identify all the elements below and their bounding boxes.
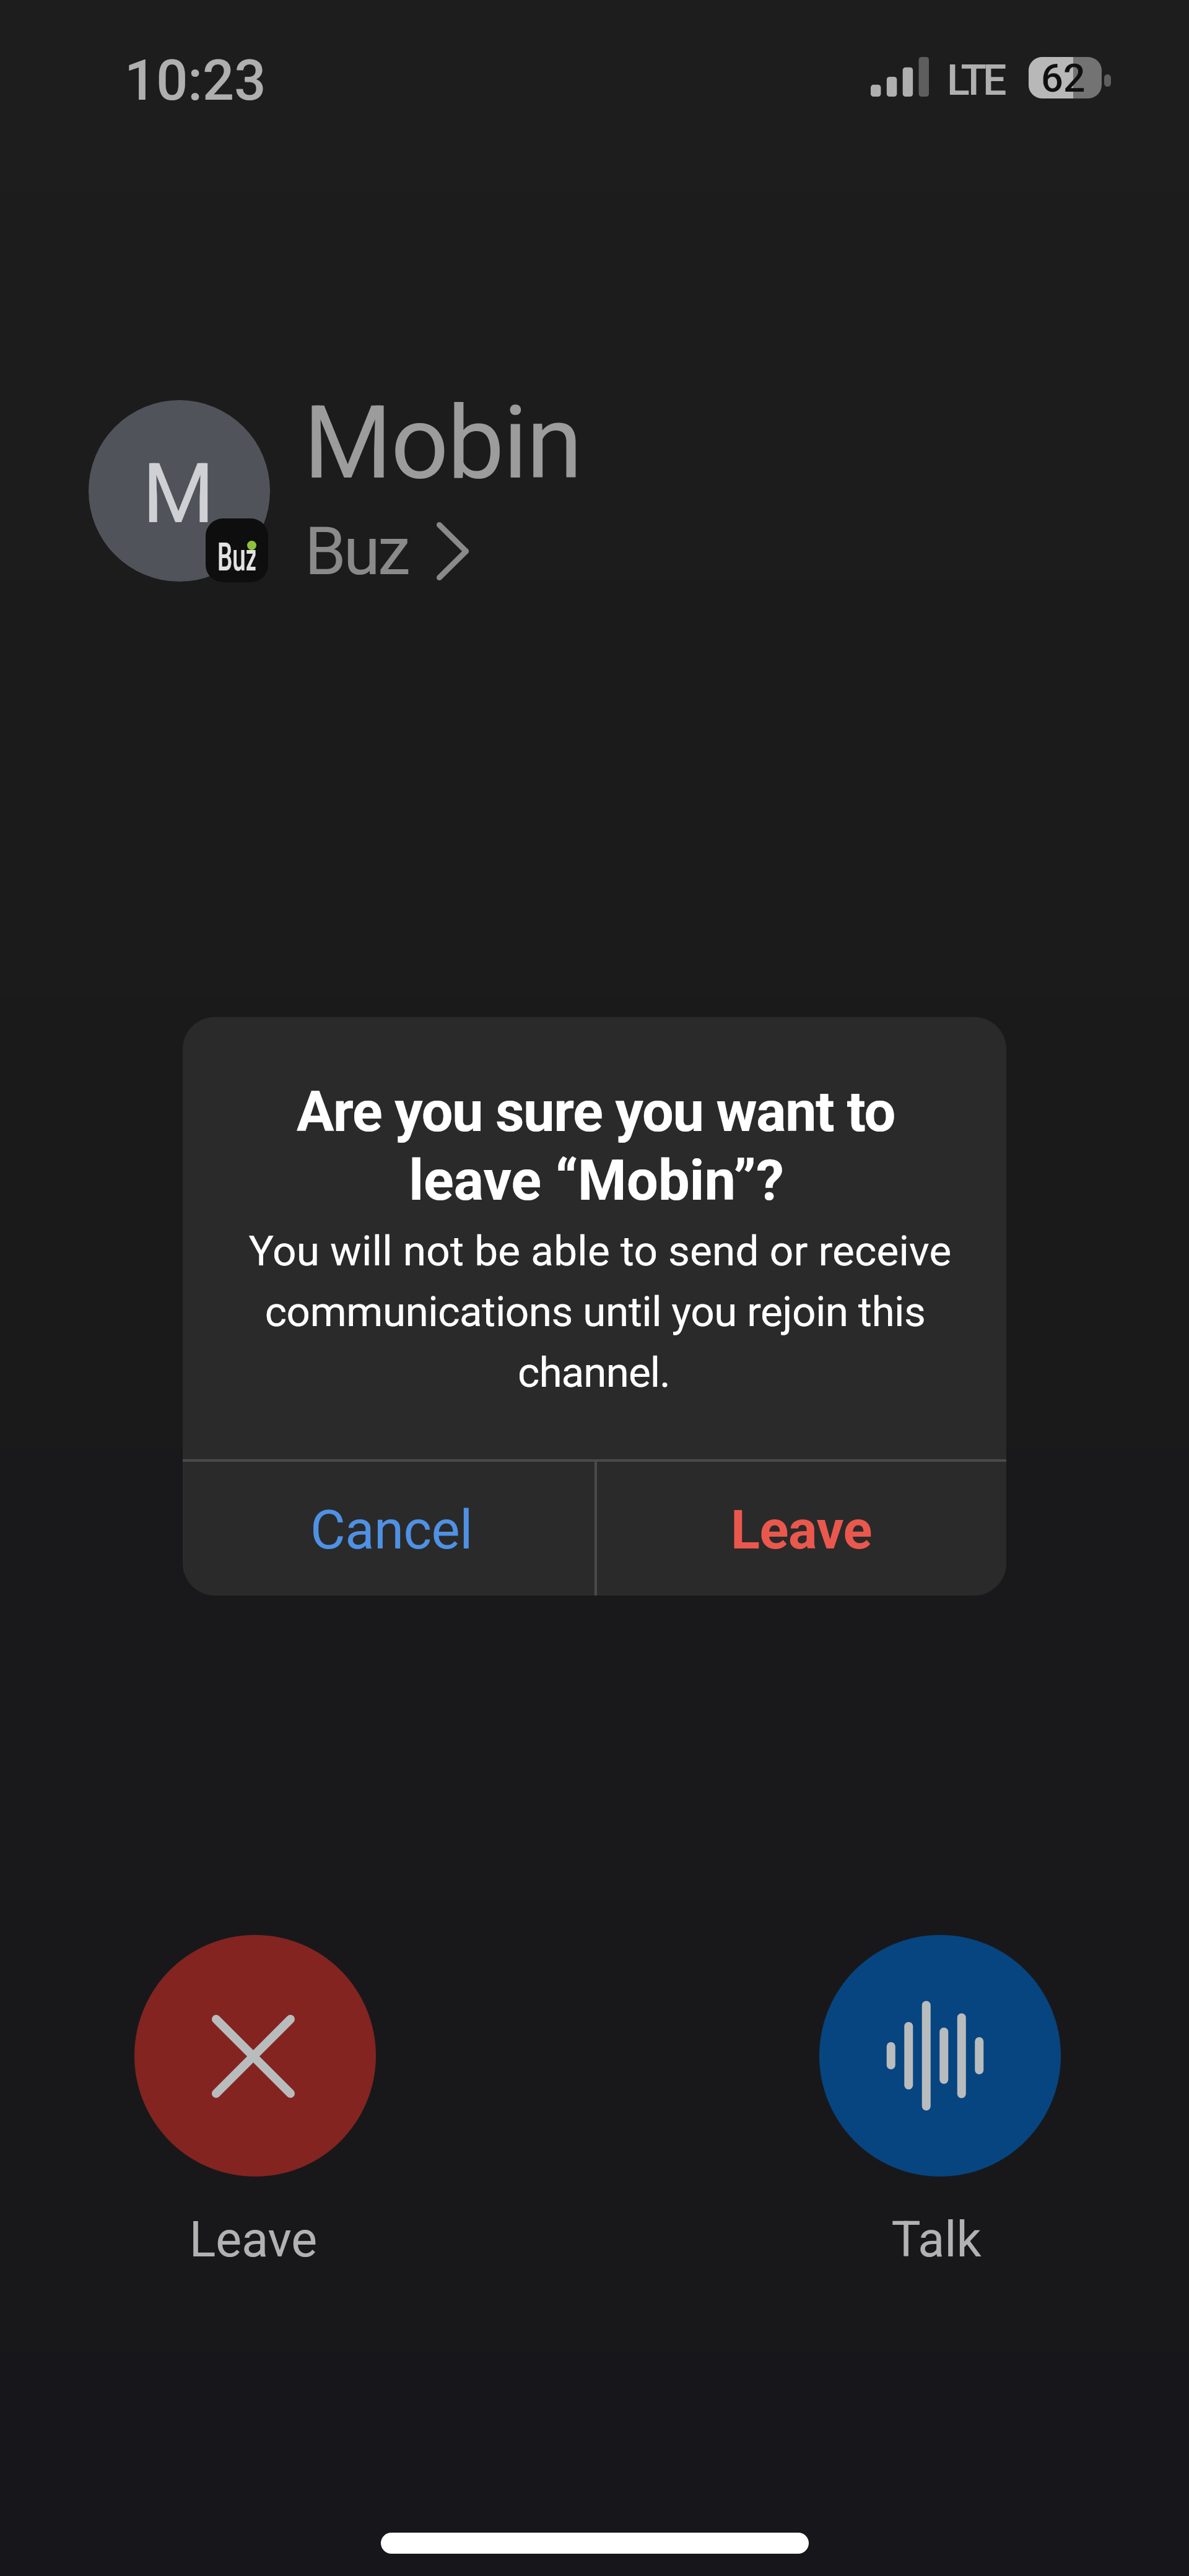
staticText: Mobin <box>303 383 581 502</box>
staticText: Buz <box>217 535 256 580</box>
button[interactable]: Leave channel <box>134 1935 376 2177</box>
staticText: Are you sure you want to <box>162 1080 1029 1145</box>
staticText: Buz <box>305 513 408 590</box>
staticText: communications until you rejoin this <box>162 1287 1029 1336</box>
staticText: Cancel <box>310 1498 473 1561</box>
button[interactable]: Leave <box>596 1458 1006 1596</box>
button[interactable]: Cancel <box>183 1458 594 1596</box>
staticText: Leave <box>0 2211 687 2269</box>
staticText: Leave <box>731 1498 872 1561</box>
staticText: Talk <box>503 2211 1189 2269</box>
button[interactable]: Talk <box>819 1935 1061 2177</box>
staticText: LTE <box>947 56 1003 105</box>
staticText: 62 <box>1041 56 1086 102</box>
button[interactable] <box>89 390 473 588</box>
staticText: M <box>142 446 215 543</box>
staticText: You will not be able to send or receive <box>167 1226 1034 1275</box>
staticText: 10:23 <box>124 48 266 113</box>
staticText: channel. <box>160 1348 1027 1397</box>
staticText: leave “Mobin”? <box>163 1148 1030 1213</box>
